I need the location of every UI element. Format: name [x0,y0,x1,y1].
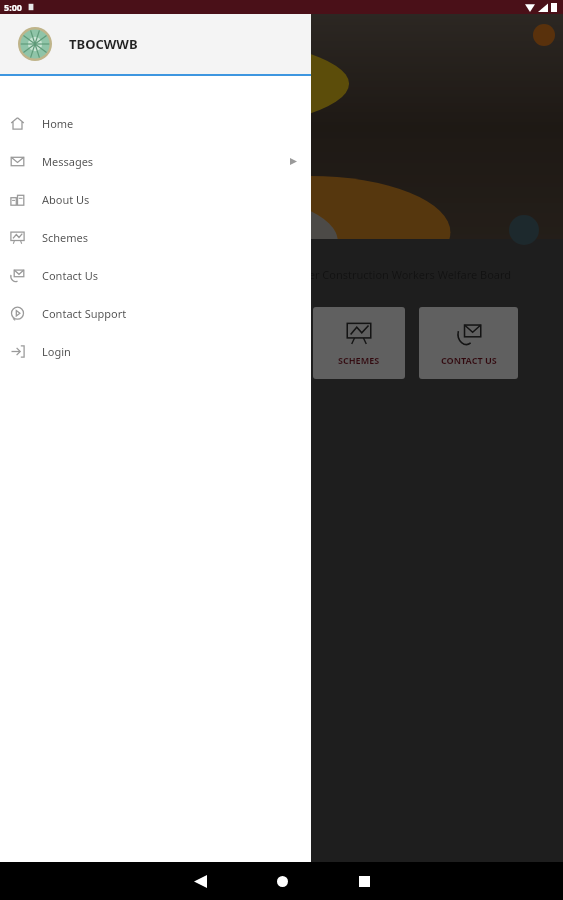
staticText: Schemes [42,230,89,245]
button[interactable]: SCHEMES [313,307,405,379]
button[interactable]: Contact Support [0,294,311,332]
staticText: SCHEMES [338,354,380,366]
button[interactable]: Contact Us [0,256,311,294]
staticText: CONTACT US [441,354,497,366]
staticText: Contact Support [42,306,127,321]
button[interactable]: Messages [0,142,311,180]
button[interactable]: Schemes [0,218,311,256]
staticText: 5:00 [4,1,22,13]
staticText: Login [42,344,71,359]
staticText: …er Construction Workers Welfare Board [300,267,512,282]
staticText: Messages [42,154,94,169]
button[interactable]: About Us [0,180,311,218]
staticText: Contact Us [42,268,98,283]
staticText: About Us [42,192,90,207]
staticText: TBOCWWB [69,35,138,53]
staticText: Home [42,116,74,131]
button[interactable]: Home [257,862,307,900]
button[interactable]: CONTACT US [419,307,518,379]
button[interactable]: Back [175,862,225,900]
button[interactable]: TBOCWWB [0,14,311,74]
button[interactable]: Home [0,104,311,142]
button[interactable]: Login [0,332,311,370]
button[interactable]: Recent apps [339,862,389,900]
